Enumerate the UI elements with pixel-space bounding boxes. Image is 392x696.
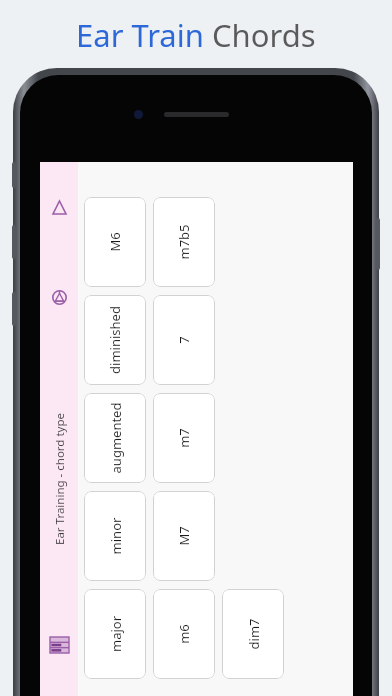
staticText: M6: [106, 232, 124, 252]
staticText: Ear Training - chord type: [51, 412, 67, 545]
staticText: major: [106, 615, 124, 652]
staticText: m7b5: [175, 224, 193, 260]
button[interactable]: diminished: [84, 295, 146, 385]
staticText: Ear Train: [76, 14, 212, 56]
staticText: Chords: [212, 14, 316, 56]
button[interactable]: Keyboard: [46, 632, 72, 658]
button[interactable]: M7: [153, 491, 215, 581]
button[interactable]: M6: [84, 197, 146, 287]
button[interactable]: dim7: [222, 589, 284, 679]
button[interactable]: Chords: [46, 284, 72, 310]
staticText: M7: [175, 526, 193, 546]
staticText: m6: [175, 624, 193, 644]
staticText: minor: [106, 517, 124, 554]
button[interactable]: 7: [153, 295, 215, 385]
button[interactable]: m6: [153, 589, 215, 679]
staticText: diminished: [106, 306, 124, 374]
button[interactable]: augmented: [84, 393, 146, 483]
button[interactable]: m7: [153, 393, 215, 483]
staticText: augmented: [106, 402, 124, 473]
button[interactable]: Intervals: [46, 194, 72, 220]
staticText: dim7: [244, 618, 262, 649]
staticText: 7: [175, 336, 193, 344]
button[interactable]: minor: [84, 491, 146, 581]
button[interactable]: major: [84, 589, 146, 679]
button[interactable]: m7b5: [153, 197, 215, 287]
staticText: m7: [175, 428, 193, 448]
